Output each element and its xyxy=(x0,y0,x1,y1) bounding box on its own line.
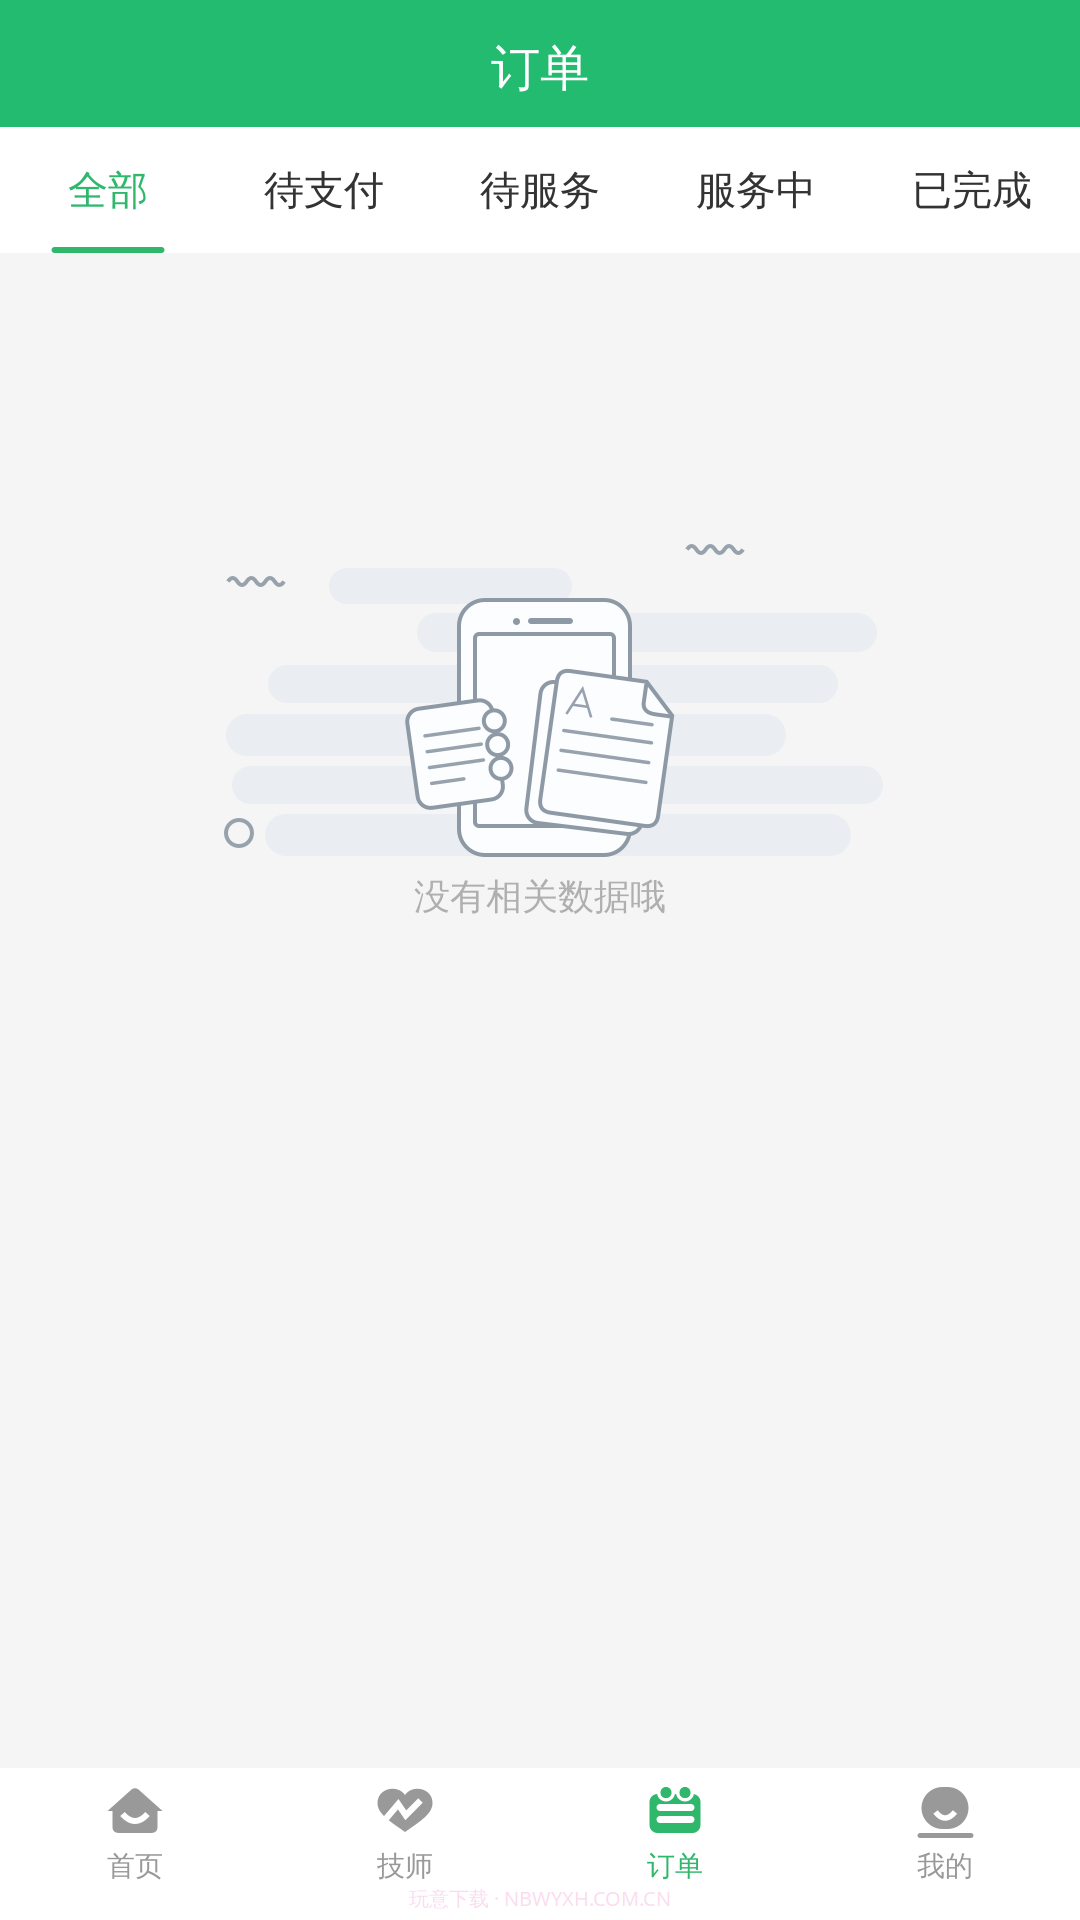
button[interactable]: 服务中 xyxy=(648,127,864,253)
staticText: 我的 xyxy=(917,1849,973,1883)
staticText: 首页 xyxy=(107,1849,163,1883)
staticText: 待支付 xyxy=(264,166,384,215)
staticText: 待服务 xyxy=(480,166,600,215)
staticText: 没有相关数据哦 xyxy=(414,875,666,919)
staticText: 技师 xyxy=(377,1849,433,1883)
button[interactable]: 待支付 xyxy=(216,127,432,253)
staticText: 玩意下载 · NBWYXH.COM.CN xyxy=(409,1885,671,1912)
button[interactable]: 待服务 xyxy=(432,127,648,253)
staticText: 已完成 xyxy=(912,166,1032,215)
staticText: 订单 xyxy=(491,38,589,99)
button[interactable]: 技师 xyxy=(270,1787,540,1897)
button[interactable]: 我的 xyxy=(810,1787,1080,1897)
staticText: 全部 xyxy=(68,166,148,215)
button[interactable]: 首页 xyxy=(0,1787,270,1897)
button[interactable]: 已完成 xyxy=(864,127,1080,253)
staticText: 订单 xyxy=(647,1849,703,1883)
button[interactable]: 订单 xyxy=(540,1787,810,1897)
button[interactable]: 全部 xyxy=(0,127,216,253)
staticText: 服务中 xyxy=(696,166,816,215)
